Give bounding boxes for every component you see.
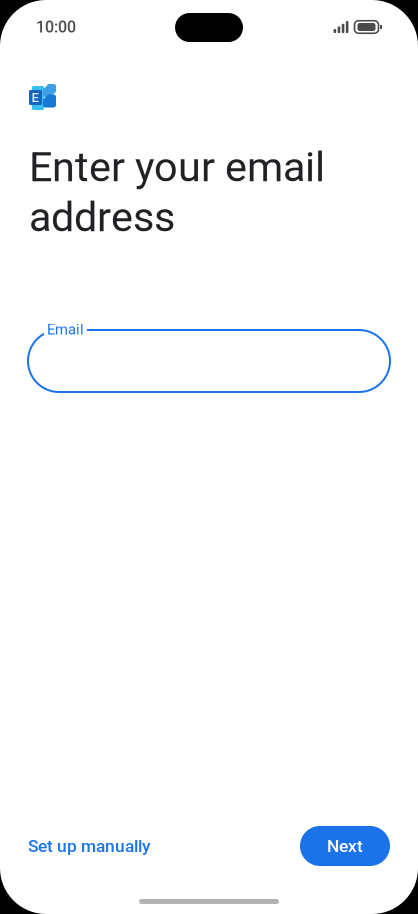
staticText: address <box>29 193 175 241</box>
button[interactable]: Next <box>300 826 390 866</box>
button[interactable]: Email <box>28 330 390 392</box>
staticText: Set up manually <box>28 836 150 856</box>
button[interactable]: Set up manually <box>28 828 150 864</box>
staticText: Enter your email <box>29 143 325 191</box>
staticText: 10:00 <box>36 18 76 36</box>
staticText: Next <box>327 836 363 856</box>
staticText: Email <box>47 321 84 338</box>
staticText: E <box>31 90 39 105</box>
